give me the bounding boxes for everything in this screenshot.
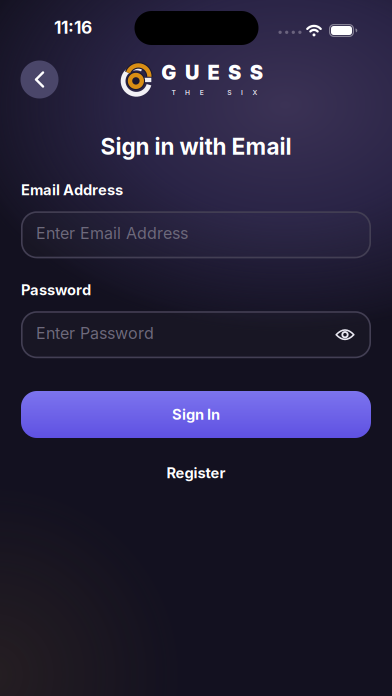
staticText: Email Address — [21, 181, 123, 199]
button[interactable]: Show password — [331, 324, 359, 345]
staticText: 11:16 — [54, 17, 92, 38]
staticText: X — [252, 89, 257, 96]
staticText: Password — [21, 281, 91, 299]
staticText: S — [227, 89, 231, 96]
staticText: H — [185, 89, 190, 96]
button[interactable]: Back — [20, 60, 58, 98]
staticText: Sign In — [172, 406, 220, 423]
staticText: Enter Password — [36, 324, 154, 343]
staticText: GUESS — [161, 61, 263, 84]
staticText: Enter Email Address — [36, 224, 188, 243]
staticText: Register — [166, 464, 225, 482]
button[interactable]: Sign In — [21, 391, 371, 438]
staticText: Sign in with Email — [100, 133, 291, 160]
staticText: T — [171, 89, 175, 96]
staticText: I — [241, 89, 243, 96]
staticText: E — [200, 89, 204, 96]
button[interactable]: Register — [166, 464, 225, 482]
